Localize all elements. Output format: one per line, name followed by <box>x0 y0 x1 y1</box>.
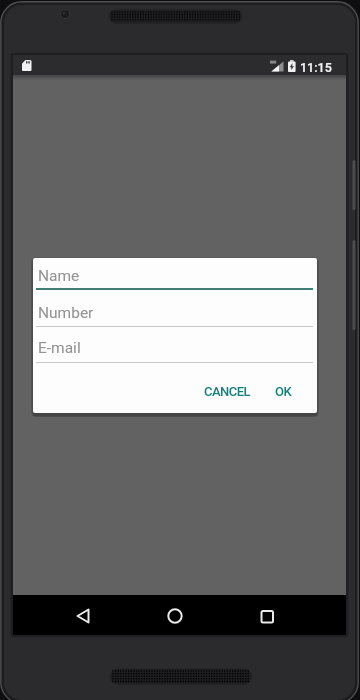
button[interactable] <box>153 596 197 635</box>
staticText: 11:15 <box>300 60 332 75</box>
button[interactable] <box>245 596 289 635</box>
staticText: CANCEL <box>204 384 250 399</box>
button[interactable]: Number <box>36 300 313 326</box>
staticText: E-mail <box>38 339 81 357</box>
button[interactable]: Name <box>36 263 313 290</box>
button[interactable] <box>61 596 105 635</box>
staticText: Number <box>38 304 94 322</box>
staticText: Name <box>38 267 80 285</box>
button[interactable]: CANCEL <box>198 378 256 404</box>
button[interactable]: E-mail <box>36 335 313 362</box>
button[interactable]: OK <box>263 378 303 404</box>
staticText: OK <box>275 384 292 399</box>
